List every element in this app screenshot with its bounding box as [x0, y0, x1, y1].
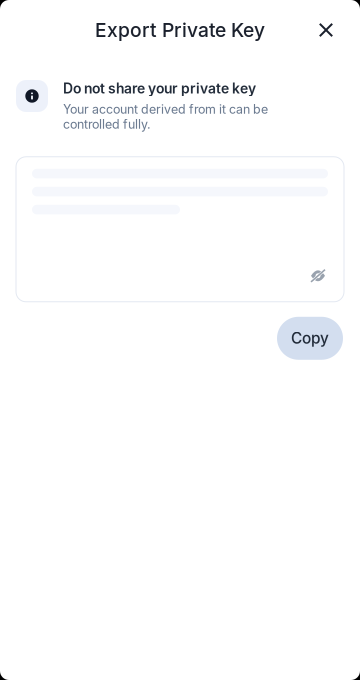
- staticText: Your account derived from it can be cont…: [63, 102, 268, 132]
- staticText: Do not share your private key: [63, 80, 256, 97]
- button[interactable]: Show private key: [308, 266, 328, 286]
- button[interactable]: Copy: [277, 317, 343, 360]
- staticText: Export Private Key: [95, 18, 265, 42]
- staticText: Copy: [291, 329, 329, 348]
- button[interactable]: Close: [309, 13, 343, 47]
